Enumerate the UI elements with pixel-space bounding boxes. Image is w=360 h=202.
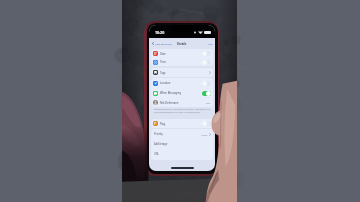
staticText: Nils Dohrmann [160, 101, 179, 105]
button[interactable]: Off [202, 60, 211, 65]
staticText: URL [154, 152, 159, 156]
button[interactable]: Add [208, 42, 213, 45]
staticText: Tags [160, 71, 166, 75]
other: More [209, 133, 211, 136]
button[interactable]: When Messaging [151, 88, 213, 98]
staticText: When Messaging [160, 91, 181, 95]
button[interactable]: Off [202, 121, 211, 126]
button[interactable]: Location [151, 78, 213, 88]
button[interactable]: On [202, 91, 211, 96]
staticText: Flag [160, 122, 166, 126]
button[interactable]: Time [151, 58, 213, 66]
staticText: Add Image [154, 142, 168, 146]
staticText: Location [160, 81, 171, 85]
staticText: New Reminder [155, 42, 172, 45]
staticText: Reminding when someone you select messag… [154, 108, 212, 114]
staticText: Priority [154, 132, 163, 136]
staticText: Details [177, 42, 187, 46]
button[interactable]: Flag [151, 119, 213, 128]
button[interactable]: New Reminder [151, 42, 173, 45]
other: More [209, 71, 211, 74]
button[interactable]: Add Image [151, 139, 213, 149]
button[interactable]: Date [151, 49, 213, 58]
button[interactable]: Tags [151, 68, 213, 77]
button[interactable]: Off [202, 51, 211, 56]
staticText: Date [160, 52, 166, 56]
button[interactable]: Priority [151, 129, 213, 139]
button[interactable]: URL [151, 149, 213, 159]
staticText: Time [160, 60, 166, 64]
button[interactable]: Off [202, 81, 211, 86]
button[interactable]: Edit [206, 101, 211, 104]
button[interactable]: Nils Dohrmann [151, 98, 213, 107]
staticText: None [201, 133, 208, 136]
staticText: 10:20 [155, 30, 165, 35]
